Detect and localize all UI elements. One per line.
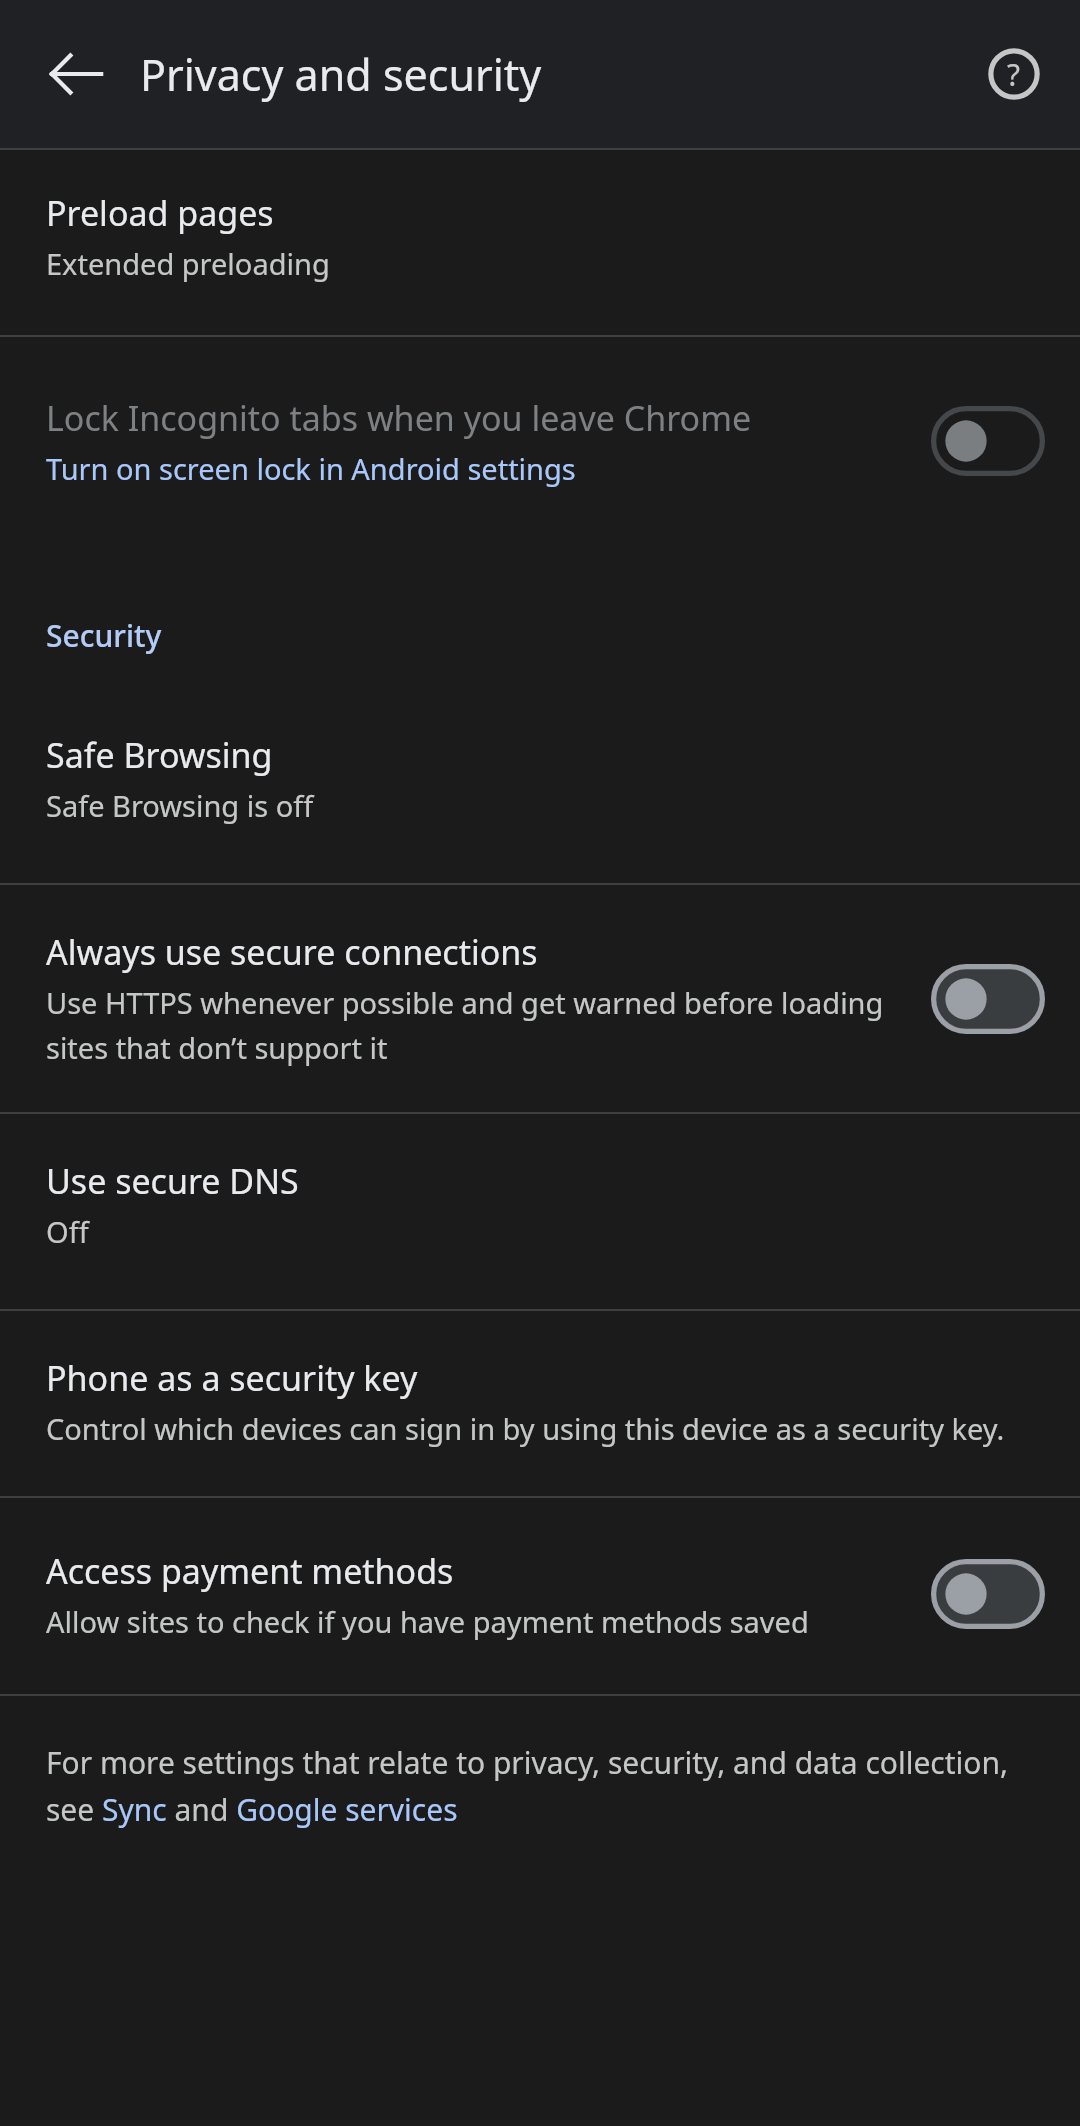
staticText: Phone as a security key <box>46 1355 418 1401</box>
staticText: Preload pages <box>46 190 274 236</box>
button[interactable]: Safe Browsing <box>0 684 1080 883</box>
button[interactable]: Toggle <box>916 389 1060 493</box>
staticText: Safe Browsing is off <box>46 786 314 825</box>
staticText: Lock Incognito tabs when you leave Chrom… <box>46 395 752 441</box>
button[interactable]: Preload pages <box>0 150 1080 335</box>
button[interactable]: Toggle <box>916 947 1060 1051</box>
staticText: For more settings that relate to privacy… <box>46 1742 1040 1830</box>
button[interactable]: Access payment methods <box>0 1498 1080 1694</box>
button[interactable]: Toggle <box>916 1542 1060 1646</box>
staticText: Off <box>46 1212 89 1251</box>
button[interactable]: Lock Incognito tabs when you leave Chrom… <box>0 337 1080 545</box>
button[interactable]: Help <box>962 22 1066 126</box>
staticText: Privacy and security <box>140 45 542 104</box>
button[interactable]: Phone as a security key <box>0 1311 1080 1496</box>
staticText: ? <box>1007 54 1021 95</box>
staticText: Turn on screen lock in Android settings <box>46 449 576 488</box>
staticText: Control which devices can sign in by usi… <box>46 1409 1005 1448</box>
button[interactable]: Use secure DNS <box>0 1114 1080 1309</box>
staticText: Access payment methods <box>46 1548 454 1594</box>
staticText: Safe Browsing <box>46 732 273 778</box>
staticText: Security <box>46 615 162 656</box>
button[interactable]: For more settings that relate to privacy… <box>0 1696 1080 1870</box>
staticText: Use HTTPS whenever possible and get warn… <box>46 983 904 1068</box>
staticText: Use secure DNS <box>46 1158 299 1204</box>
button[interactable]: Always use secure connections <box>0 885 1080 1112</box>
staticText: Always use secure connections <box>46 929 538 975</box>
staticText: Extended preloading <box>46 244 330 283</box>
button[interactable]: Back <box>24 22 128 126</box>
staticText: Allow sites to check if you have payment… <box>46 1602 809 1641</box>
